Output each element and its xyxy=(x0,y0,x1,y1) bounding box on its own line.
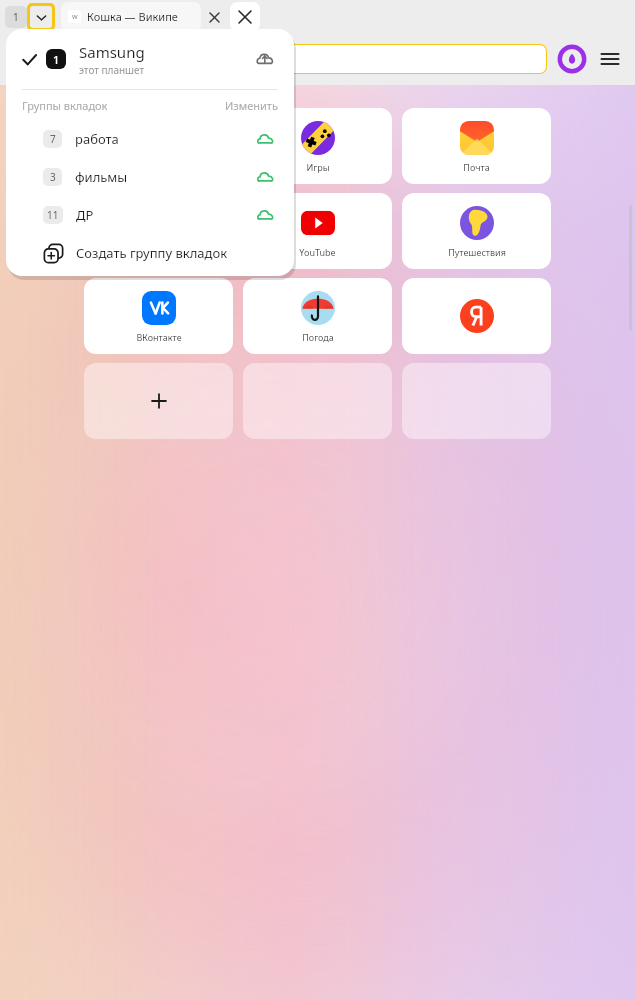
staticText: работа xyxy=(75,130,119,148)
staticText: Создать группу вкладок xyxy=(76,244,228,262)
staticText: Запрос или адрес сайта xyxy=(22,51,161,67)
staticText: 1 xyxy=(13,10,19,24)
button[interactable]: Закрыть вкладку xyxy=(201,4,227,30)
staticText: ДР xyxy=(76,206,94,224)
button[interactable] xyxy=(243,363,392,439)
button[interactable]: YouTube xyxy=(243,193,392,269)
button[interactable]: Алиса xyxy=(557,44,587,74)
staticText: Кошка — Википе xyxy=(87,9,178,24)
button[interactable] xyxy=(402,278,551,354)
button[interactable]: W xyxy=(61,2,201,31)
staticText: этот планшет xyxy=(79,63,145,77)
staticText: Изменить xyxy=(225,98,278,113)
staticText: YouTube xyxy=(299,246,336,258)
button[interactable]: Игры xyxy=(243,108,392,184)
button[interactable]: Синхронизация xyxy=(252,46,278,72)
staticText: 1 xyxy=(53,52,60,67)
button[interactable]: Дзен xyxy=(84,108,233,184)
staticText: Игры xyxy=(306,161,330,173)
button[interactable]: Запрос или адрес сайта xyxy=(10,44,547,74)
button[interactable]: ВКонтакте xyxy=(84,278,233,354)
staticText: фильмы xyxy=(75,168,128,186)
staticText: 3 xyxy=(50,170,56,184)
button[interactable]: Список вкладок xyxy=(30,6,52,28)
button[interactable]: 1 xyxy=(6,29,294,89)
staticText: Погода xyxy=(302,331,334,343)
button[interactable]: 3 xyxy=(6,158,294,196)
button[interactable]: Изменить xyxy=(225,98,278,113)
button[interactable]: Путешествия xyxy=(402,193,551,269)
staticText: 7 xyxy=(50,132,56,146)
staticText: W xyxy=(72,13,78,21)
staticText: Группы вкладок xyxy=(22,98,108,113)
other: Добавить сайт xyxy=(149,391,169,411)
button[interactable]: Погода xyxy=(243,278,392,354)
button[interactable]: 1 xyxy=(5,6,27,28)
button[interactable]: Создать группу вкладок xyxy=(6,234,294,272)
button[interactable]: Меню xyxy=(595,44,625,74)
button[interactable]: Облако xyxy=(252,164,278,190)
staticText: 11 xyxy=(47,208,59,222)
staticText: Samsung xyxy=(79,42,145,62)
staticText: Маркет xyxy=(142,246,175,258)
button[interactable]: Облако xyxy=(252,126,278,152)
button[interactable]: Облако xyxy=(252,202,278,228)
button[interactable]: Маркет xyxy=(84,193,233,269)
button[interactable]: Закрыть xyxy=(230,2,260,31)
staticText: Путешествия xyxy=(448,246,506,258)
button[interactable]: 11 xyxy=(6,196,294,234)
staticText: ВКонтакте xyxy=(136,331,182,343)
button[interactable]: 7 xyxy=(6,120,294,158)
button[interactable]: Почта xyxy=(402,108,551,184)
staticText: Почта xyxy=(463,161,490,173)
button[interactable]: Добавить сайт xyxy=(84,363,233,439)
